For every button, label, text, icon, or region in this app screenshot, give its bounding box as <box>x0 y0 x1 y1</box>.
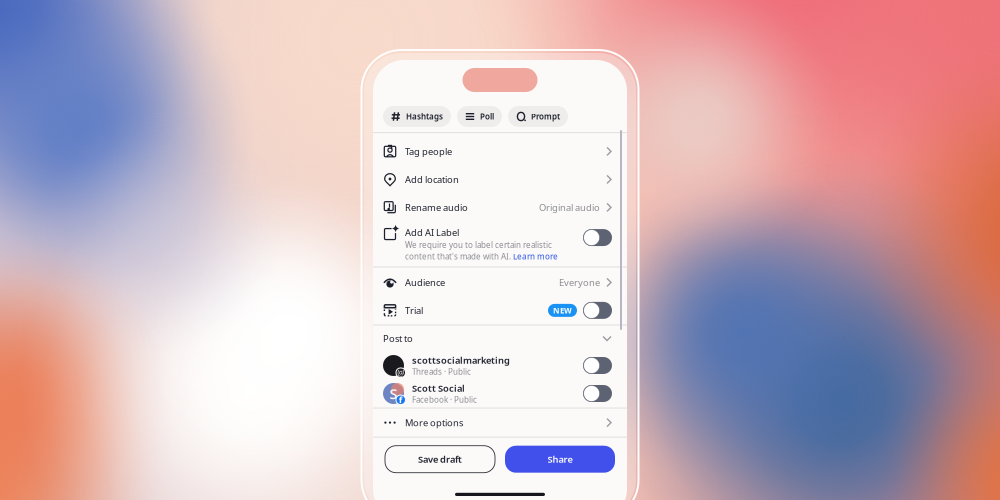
staticText: Everyone <box>559 276 600 289</box>
button[interactable]: Trial <box>373 296 627 324</box>
staticText: We require you to label certain realisti… <box>405 239 552 250</box>
staticText: Audience <box>405 276 445 289</box>
button[interactable]: Tag people <box>373 137 627 165</box>
button[interactable]: Poll <box>457 106 502 127</box>
button[interactable]: S <box>373 379 627 407</box>
staticText: scottsocialmarketing <box>412 354 510 366</box>
staticText: Hashtags <box>406 111 443 122</box>
button[interactable]: Save draft <box>385 446 495 473</box>
staticText: Trial <box>405 304 423 317</box>
staticText: NEW <box>553 305 572 316</box>
staticText: More options <box>405 416 463 429</box>
button[interactable]: Add location <box>373 165 627 193</box>
staticText: Scott Social <box>412 382 465 394</box>
staticText: S <box>389 384 397 403</box>
button[interactable]: Hashtags <box>383 106 451 127</box>
button[interactable]: Prompt <box>508 106 568 127</box>
staticText: Save draft <box>418 453 462 465</box>
staticText: Facebook · Public <box>412 394 477 405</box>
staticText: Add AI Label <box>405 226 459 238</box>
staticText: Tag people <box>405 145 452 158</box>
staticText: f <box>399 394 403 406</box>
button[interactable]: More options <box>373 409 627 437</box>
staticText: Prompt <box>531 111 560 122</box>
staticText: Rename audio <box>405 201 468 214</box>
staticText: Learn more <box>513 251 558 262</box>
staticText: Original audio <box>539 201 600 214</box>
staticText: Post to <box>383 332 413 345</box>
staticText: @ <box>397 367 404 378</box>
staticText: Poll <box>480 111 494 122</box>
button[interactable]: @ <box>373 351 627 379</box>
button[interactable]: Share <box>505 446 615 473</box>
staticText: Share <box>547 453 572 465</box>
button[interactable]: Audience <box>373 268 627 296</box>
staticText: Threads · Public <box>412 366 471 377</box>
button[interactable]: Post to <box>373 325 627 351</box>
button[interactable]: Rename audio <box>373 193 627 221</box>
staticText: content that's made with AI. <box>405 251 513 262</box>
button[interactable]: Add AI Label <box>373 221 627 266</box>
staticText: Add location <box>405 173 459 186</box>
